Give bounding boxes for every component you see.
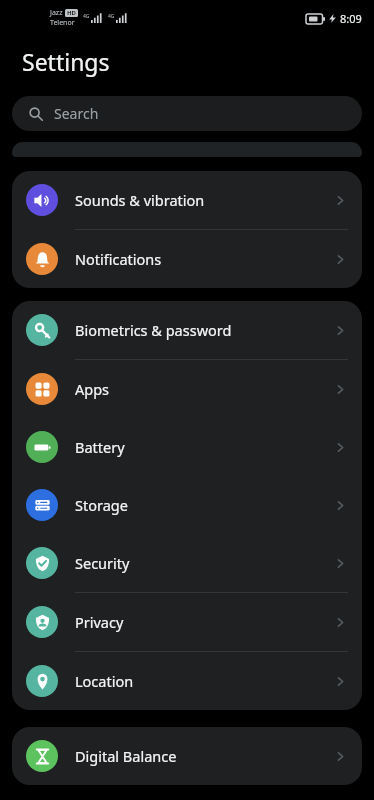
staticText: Biometrics & password bbox=[75, 320, 332, 340]
staticText: Privacy bbox=[75, 612, 332, 632]
button[interactable]: Apps bbox=[12, 360, 362, 418]
button[interactable]: Notifications bbox=[12, 230, 362, 288]
other: Open Storage bbox=[332, 497, 348, 513]
button[interactable]: Biometrics & password bbox=[12, 301, 362, 360]
staticText: Location bbox=[75, 671, 332, 691]
other: Open Location bbox=[332, 673, 348, 689]
other: Open Battery bbox=[332, 439, 348, 455]
staticText: Notifications bbox=[75, 249, 332, 269]
staticText: Sounds & vibration bbox=[75, 190, 332, 210]
button[interactable]: Battery bbox=[12, 418, 362, 476]
button[interactable]: Search bbox=[12, 96, 362, 131]
other: Open Biometrics & password bbox=[332, 322, 348, 338]
button[interactable]: Storage bbox=[12, 476, 362, 534]
button[interactable]: Privacy bbox=[12, 593, 362, 652]
other: Open Sounds & vibration bbox=[332, 192, 348, 208]
other: Open Apps bbox=[332, 381, 348, 397]
button[interactable] bbox=[12, 142, 362, 157]
staticText: Storage bbox=[75, 495, 332, 515]
staticText: Battery bbox=[75, 437, 332, 457]
staticText: 8:09 bbox=[340, 11, 362, 26]
button[interactable]: Security bbox=[12, 534, 362, 593]
staticText: Security bbox=[75, 553, 332, 573]
other: Open Security bbox=[332, 555, 348, 571]
staticText: HD bbox=[67, 9, 76, 17]
button[interactable]: Digital Balance bbox=[12, 727, 362, 785]
staticText: Telenor bbox=[50, 18, 75, 28]
staticText: Search bbox=[54, 104, 99, 123]
staticText: Jazz bbox=[50, 8, 63, 18]
other: Open Notifications bbox=[332, 251, 348, 267]
button[interactable]: Sounds & vibration bbox=[12, 171, 362, 230]
other: Open Privacy bbox=[332, 614, 348, 630]
staticText: Settings bbox=[22, 46, 110, 77]
staticText: 4G bbox=[83, 13, 90, 20]
staticText: Digital Balance bbox=[75, 746, 332, 766]
button[interactable]: Location bbox=[12, 652, 362, 710]
staticText: Apps bbox=[75, 379, 332, 399]
other: Open Digital Balance bbox=[332, 748, 348, 764]
staticText: 4G bbox=[108, 13, 115, 20]
